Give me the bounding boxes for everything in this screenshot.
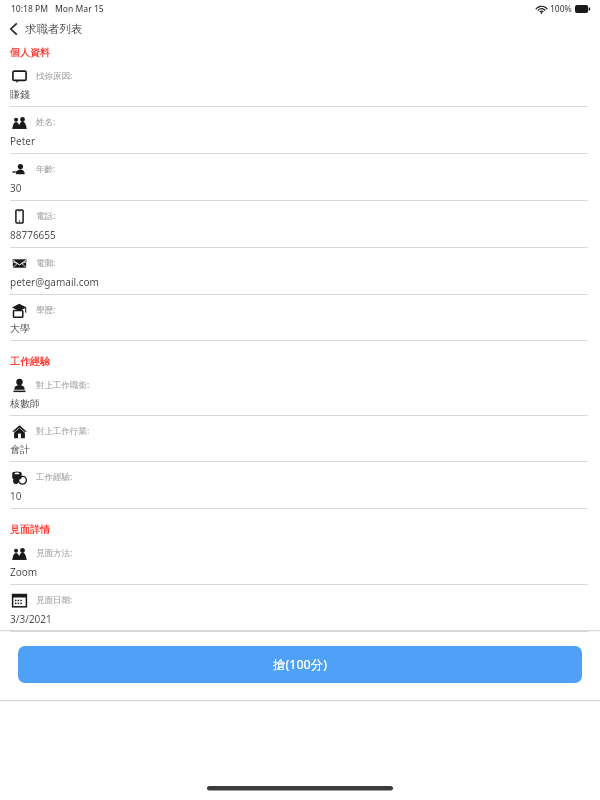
button[interactable]: 學歷: bbox=[0, 295, 600, 341]
staticText: 3/3/2021 bbox=[10, 612, 52, 626]
button[interactable]: 電郵: bbox=[0, 248, 600, 295]
staticText: Zoom bbox=[10, 565, 38, 579]
staticText: 電話: bbox=[36, 210, 56, 222]
staticText: peter@gamail.com bbox=[10, 275, 99, 289]
staticText: 會計 bbox=[10, 443, 30, 456]
button[interactable]: 見面日期: bbox=[0, 585, 600, 632]
staticText: 搶(100分) bbox=[273, 656, 327, 673]
button[interactable]: 對上工作職銜: bbox=[0, 370, 600, 416]
button[interactable]: 年齡: bbox=[0, 154, 600, 201]
button[interactable]: 找你原因: bbox=[0, 61, 600, 107]
staticText: 工作經驗: bbox=[36, 471, 73, 483]
staticText: 姓名: bbox=[36, 116, 56, 128]
staticText: Peter bbox=[10, 134, 36, 148]
button[interactable]: 對上工作行業: bbox=[0, 416, 600, 462]
staticText: 工作經驗 bbox=[10, 355, 50, 368]
staticText: 100% bbox=[550, 3, 572, 15]
staticText: 年齡: bbox=[36, 163, 56, 175]
staticText: 88776655 bbox=[10, 228, 56, 242]
staticText: 10:18 PM bbox=[11, 3, 48, 15]
staticText: 見面日期: bbox=[36, 594, 73, 606]
other: Back bbox=[9, 22, 19, 36]
staticText: 對上工作職銜: bbox=[36, 379, 90, 391]
staticText: 見面方法: bbox=[36, 547, 73, 559]
staticText: 電郵: bbox=[36, 257, 56, 269]
staticText: 核數師 bbox=[10, 397, 40, 410]
staticText: 10 bbox=[10, 489, 22, 503]
staticText: 賺錢 bbox=[10, 88, 30, 101]
button[interactable]: 搶(100分) bbox=[18, 646, 582, 683]
staticText: Mon Mar 15 bbox=[55, 3, 104, 15]
staticText: 個人資料 bbox=[10, 46, 50, 59]
staticText: 對上工作行業: bbox=[36, 425, 90, 437]
staticText: 大學 bbox=[10, 322, 30, 335]
staticText: 30 bbox=[10, 181, 22, 195]
button[interactable]: 見面方法: bbox=[0, 538, 600, 585]
staticText: 找你原因: bbox=[36, 70, 73, 82]
staticText: 學歷: bbox=[36, 304, 56, 316]
staticText: 求職者列表 bbox=[25, 22, 83, 36]
button[interactable]: Back bbox=[0, 18, 600, 40]
button[interactable]: 電話: bbox=[0, 201, 600, 248]
button[interactable]: 工作經驗: bbox=[0, 462, 600, 509]
button[interactable]: 姓名: bbox=[0, 107, 600, 154]
staticText: 見面詳情 bbox=[10, 523, 50, 536]
